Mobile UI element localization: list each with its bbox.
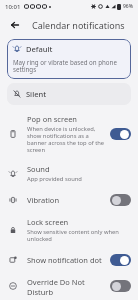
staticText: Override Do Not Disturb xyxy=(27,277,105,295)
button[interactable]: Off xyxy=(110,194,131,206)
staticText: Pop on screen xyxy=(27,114,77,124)
staticText: 96% xyxy=(123,3,133,10)
button[interactable]: Silent xyxy=(7,83,131,105)
staticText: Default xyxy=(26,44,53,54)
button[interactable]: On xyxy=(110,128,131,140)
button[interactable]: Vibration xyxy=(0,188,138,212)
staticText: Silent xyxy=(26,89,47,99)
staticText: 10:01 xyxy=(5,3,21,11)
button[interactable]: Lock screen xyxy=(0,212,138,248)
staticText: Sound xyxy=(27,164,50,174)
staticText: May ring or vibrate based on phone setti… xyxy=(13,58,125,74)
button[interactable]: Off xyxy=(110,280,131,292)
staticText: Calendar notifications xyxy=(32,19,125,31)
staticText: Lock screen xyxy=(27,217,69,227)
button[interactable]: Show notification dot xyxy=(0,248,138,272)
staticText: Vibration xyxy=(27,195,60,205)
button[interactable]: Back xyxy=(6,16,24,34)
staticText: Show sensitive content only when unlocke… xyxy=(27,228,131,243)
button[interactable]: Pop on screen xyxy=(0,109,138,159)
staticText: Show notification dot xyxy=(27,255,102,265)
staticText: When device is unlocked, show notificati… xyxy=(27,125,105,154)
button[interactable]: Sound xyxy=(0,159,138,188)
button[interactable]: Override Do Not Disturb xyxy=(0,272,138,300)
staticText: App provided sound xyxy=(27,175,82,183)
button[interactable]: Default xyxy=(7,39,131,79)
button[interactable]: On xyxy=(110,254,131,266)
